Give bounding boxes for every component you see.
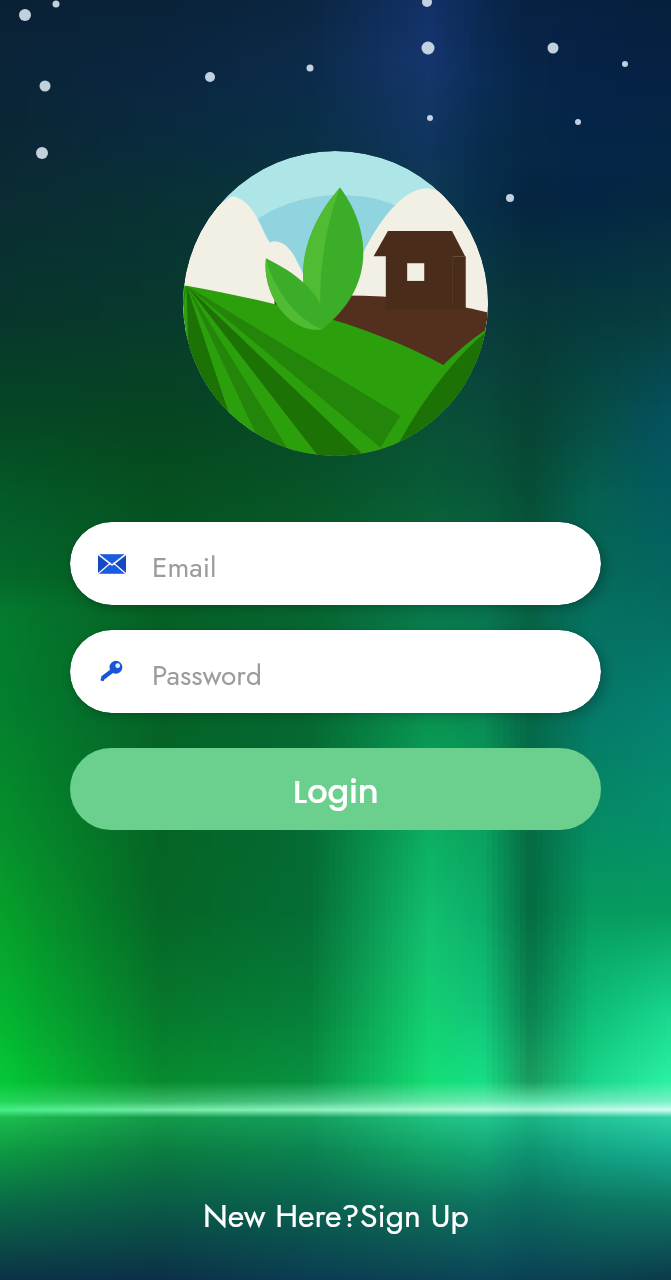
button[interactable]: Sign Up [360, 1193, 469, 1239]
button[interactable]: Email [70, 522, 601, 605]
button[interactable]: Login [70, 748, 601, 830]
staticText: Password [152, 655, 262, 695]
staticText: Sign Up [360, 1193, 469, 1239]
staticText: Login [293, 769, 379, 814]
staticText: New Here? [203, 1193, 360, 1239]
staticText: Email [152, 547, 217, 587]
button[interactable]: Password [70, 630, 601, 713]
